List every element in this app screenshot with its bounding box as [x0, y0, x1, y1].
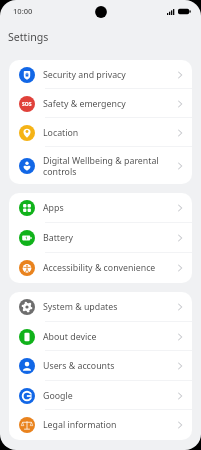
other: Open [174, 360, 186, 372]
staticText: Legal information [43, 419, 170, 431]
other: Open [174, 232, 186, 244]
other: Open [174, 127, 186, 139]
other: Open [174, 98, 186, 110]
staticText: Battery [43, 232, 170, 244]
button[interactable]: Users & accounts [9, 351, 192, 381]
button[interactable]: Accessibility & convenience [9, 253, 192, 283]
staticText: Location [43, 127, 170, 139]
staticText: About device [43, 331, 170, 343]
button[interactable]: Legal information [9, 410, 192, 440]
other: Open [174, 419, 186, 431]
other: Open [174, 301, 186, 313]
staticText: Digital Wellbeing & parental controls [43, 155, 170, 177]
staticText: Users & accounts [43, 360, 170, 372]
other: Open [174, 331, 186, 343]
button[interactable]: Location [9, 118, 192, 147]
staticText: Settings [8, 30, 49, 44]
other: Open [174, 160, 186, 172]
staticText: Safety & emergency [43, 98, 170, 110]
other: Open [174, 202, 186, 214]
staticText: 10:00 [13, 6, 33, 16]
button[interactable]: Security and privacy [9, 60, 192, 89]
staticText: SOS [22, 101, 32, 108]
staticText: Google [43, 390, 170, 402]
button[interactable]: Digital Wellbeing & parental controls [9, 147, 192, 184]
other: Open [174, 390, 186, 402]
staticText: Accessibility & convenience [43, 262, 170, 274]
button[interactable]: Google [9, 381, 192, 410]
other: Open [174, 262, 186, 274]
staticText: Security and privacy [43, 69, 170, 81]
staticText: System & updates [43, 301, 170, 313]
button[interactable]: System & updates [9, 292, 192, 322]
button[interactable]: Battery [9, 223, 192, 253]
button[interactable]: SOS [9, 89, 192, 118]
other: Open [174, 69, 186, 81]
button[interactable]: About device [9, 322, 192, 351]
button[interactable]: Apps [9, 193, 192, 223]
staticText: Apps [43, 202, 170, 214]
